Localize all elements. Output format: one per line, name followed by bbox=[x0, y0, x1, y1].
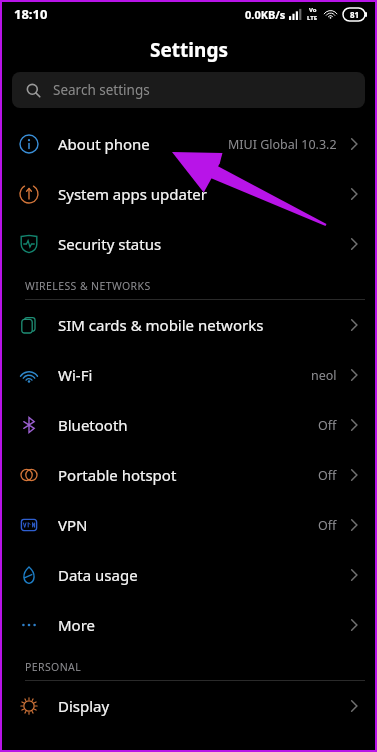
staticText: Search settings bbox=[53, 81, 150, 99]
staticText: LTE bbox=[307, 14, 318, 22]
staticText: Off bbox=[318, 417, 337, 434]
button[interactable]: Bluetooth bbox=[0, 400, 377, 450]
staticText: System apps updater bbox=[58, 184, 347, 204]
button[interactable]: About phone bbox=[0, 119, 377, 169]
staticText: Vo bbox=[309, 6, 317, 14]
button[interactable]: Data usage bbox=[0, 550, 377, 600]
staticText: 0.0KB/s bbox=[245, 7, 286, 22]
staticText: WIRELESS & NETWORKS bbox=[25, 279, 151, 293]
staticText: About phone bbox=[58, 134, 228, 154]
button[interactable]: More bbox=[0, 600, 377, 650]
button[interactable]: Search settings bbox=[12, 72, 365, 108]
staticText: 81 bbox=[350, 9, 360, 20]
staticText: Off bbox=[318, 467, 337, 484]
staticText: Wi-Fi bbox=[58, 365, 311, 385]
staticText: MIUI Global 10.3.2 bbox=[228, 136, 337, 153]
staticText: Display bbox=[58, 696, 347, 716]
staticText: Data usage bbox=[58, 565, 347, 585]
staticText: Settings bbox=[150, 37, 228, 63]
staticText: SIM cards & mobile networks bbox=[58, 315, 347, 335]
button[interactable]: System apps updater bbox=[0, 169, 377, 219]
staticText: Portable hotspot bbox=[58, 465, 318, 485]
staticText: VPN bbox=[58, 515, 318, 535]
button[interactable]: Security status bbox=[0, 219, 377, 269]
button[interactable]: SIM cards & mobile networks bbox=[0, 300, 377, 350]
staticText: neol bbox=[311, 367, 337, 384]
staticText: Bluetooth bbox=[58, 415, 318, 435]
button[interactable]: Wi-Fi bbox=[0, 350, 377, 400]
button[interactable]: VPN bbox=[0, 500, 377, 550]
staticText: Off bbox=[318, 517, 337, 534]
staticText: PERSONAL bbox=[25, 660, 82, 674]
button[interactable]: Display bbox=[0, 681, 377, 731]
staticText: 18:10 bbox=[14, 5, 48, 23]
staticText: More bbox=[58, 615, 347, 635]
staticText: Security status bbox=[58, 234, 347, 254]
button[interactable]: Portable hotspot bbox=[0, 450, 377, 500]
